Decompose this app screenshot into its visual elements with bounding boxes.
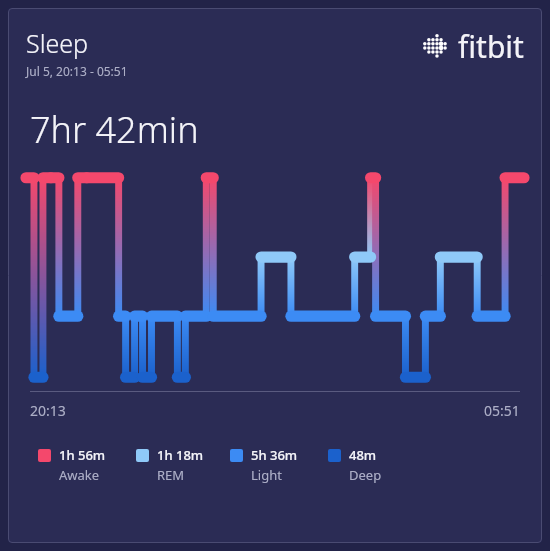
button[interactable]: 1h 56m: [38, 446, 136, 484]
staticText: Awake: [59, 466, 100, 484]
staticText: 05:51: [484, 401, 520, 420]
staticText: 1h 18m: [157, 446, 204, 464]
button[interactable]: Fitbit: [422, 26, 524, 67]
staticText: 5h 36m: [251, 446, 298, 464]
staticText: 1h 56m: [59, 446, 106, 464]
button[interactable]: 5h 36m: [230, 446, 328, 484]
staticText: fitbit: [458, 26, 524, 67]
button[interactable]: 48m: [328, 446, 408, 484]
staticText: Sleep: [26, 26, 89, 60]
staticText: 48m: [349, 446, 377, 464]
staticText: 7hr 42min: [30, 105, 199, 154]
button[interactable]: 1h 18m: [136, 446, 230, 484]
staticText: Deep: [349, 466, 382, 484]
staticText: Jul 5, 20:13 - 05:51: [26, 63, 128, 79]
staticText: REM: [157, 466, 185, 484]
button[interactable]: Sleep stages chart: [26, 170, 524, 385]
staticText: 20:13: [30, 401, 66, 420]
staticText: Light: [251, 466, 282, 484]
